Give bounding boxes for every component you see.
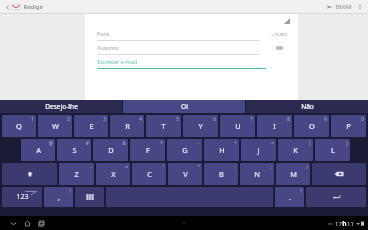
- staticText: Oi: [181, 102, 188, 111]
- staticText: +: [234, 140, 237, 146]
- button[interactable]: Oi: [123, 100, 245, 113]
- staticText: R: [125, 121, 130, 131]
- staticText: 6: [213, 116, 216, 122]
- button[interactable]: Recentes: [34, 216, 48, 230]
- staticText: *: [160, 140, 163, 146]
- button[interactable]: Não: [246, 100, 368, 113]
- staticText: V: [183, 169, 188, 179]
- button[interactable]: .: [275, 187, 304, 207]
- button[interactable]: V: [168, 163, 202, 185]
- staticText: 7: [250, 116, 253, 122]
- staticText: H: [219, 145, 225, 155]
- staticText: Redigir: [23, 3, 44, 11]
- staticText: 4: [139, 116, 142, 122]
- staticText: ;: [270, 164, 272, 170]
- button[interactable]: C: [132, 163, 166, 185]
- button[interactable]: I: [257, 115, 292, 137]
- staticText: U: [235, 121, 241, 131]
- staticText: -: [90, 164, 92, 170]
- staticText: D: [108, 145, 114, 155]
- button[interactable]: Enter: [306, 187, 366, 207]
- staticText: G: [182, 145, 188, 155]
- staticText: =: [271, 140, 274, 146]
- staticText: 3: [103, 116, 106, 122]
- button[interactable]: Início: [20, 216, 34, 230]
- button[interactable]: Teclado: [75, 187, 104, 207]
- staticText: .: [289, 192, 291, 202]
- button[interactable]: Z: [59, 163, 94, 185]
- staticText: 11: [347, 220, 354, 228]
- staticText: -: [198, 140, 200, 146]
- button[interactable]: F: [130, 139, 165, 161]
- button[interactable]: O: [294, 115, 329, 137]
- staticText: T: [161, 121, 166, 131]
- staticText: Escrever e-mail: [97, 58, 137, 66]
- staticText: Y: [198, 121, 203, 131]
- button[interactable]: R: [110, 115, 144, 137]
- button[interactable]: Y: [183, 115, 218, 137]
- button[interactable]: Mais opções: [355, 0, 365, 14]
- staticText: ENVIAR: [335, 4, 352, 10]
- button[interactable]: E: [74, 115, 108, 137]
- button[interactable]: Assunto: [85, 41, 298, 55]
- button[interactable]: ,: [44, 187, 73, 207]
- button[interactable]: T: [146, 115, 181, 137]
- button[interactable]: W: [38, 115, 72, 137]
- button[interactable]: U: [220, 115, 255, 137]
- button[interactable]: Para: [85, 27, 298, 41]
- staticText: P: [346, 121, 351, 131]
- staticText: ): [346, 140, 348, 146]
- staticText: !: [69, 188, 71, 194]
- staticText: M: [290, 169, 297, 179]
- staticText: K: [293, 145, 298, 155]
- staticText: W: [52, 121, 59, 131]
- staticText: 8: [287, 116, 290, 122]
- staticText: ¤: [125, 164, 128, 170]
- staticText: ': [163, 164, 164, 170]
- staticText: L: [331, 145, 335, 155]
- staticText: I: [273, 121, 276, 131]
- staticText: O: [309, 121, 315, 131]
- button[interactable]: X: [96, 163, 130, 185]
- staticText: @: [49, 140, 53, 146]
- staticText: S: [72, 145, 77, 155]
- button[interactable]: N: [240, 163, 274, 185]
- staticText: :: [234, 164, 236, 170]
- staticText: 0: [361, 116, 364, 122]
- button[interactable]: Apagar: [312, 163, 366, 185]
- staticText: A: [36, 145, 41, 155]
- button[interactable]: P: [331, 115, 366, 137]
- button[interactable]: Redigir: [3, 2, 46, 12]
- button[interactable]: L: [315, 139, 350, 161]
- staticText: 5: [176, 116, 179, 122]
- button[interactable]: Voltar: [6, 216, 20, 230]
- staticText: 1: [31, 116, 34, 122]
- button[interactable]: D: [93, 139, 128, 161]
- staticText: 123: [16, 192, 29, 202]
- button[interactable]: H: [204, 139, 239, 161]
- button[interactable]: J: [241, 139, 276, 161]
- staticText: Assunto: [97, 44, 119, 52]
- button[interactable]: G: [167, 139, 202, 161]
- staticText: &: [122, 140, 126, 146]
- button[interactable]: Shift: [2, 163, 57, 185]
- staticText: 17: [335, 220, 342, 228]
- button[interactable]: 123: [2, 187, 42, 207]
- button[interactable]: S: [57, 139, 91, 161]
- button[interactable]: Enviar: [323, 3, 355, 11]
- button[interactable]: M: [276, 163, 310, 185]
- staticText: Z: [74, 169, 79, 179]
- staticText: J: [257, 145, 260, 155]
- button[interactable]: Desejo-lhe: [0, 100, 122, 113]
- button[interactable]: Q: [2, 115, 36, 137]
- staticText: #: [86, 140, 89, 146]
- button[interactable]: K: [278, 139, 313, 161]
- staticText: Para: [97, 30, 109, 38]
- button[interactable]: A: [21, 139, 55, 161]
- staticText: F: [146, 145, 150, 155]
- staticText: Q: [16, 121, 22, 131]
- button[interactable]: B: [204, 163, 238, 185]
- staticText: B: [219, 169, 224, 179]
- staticText: ?: [300, 188, 302, 194]
